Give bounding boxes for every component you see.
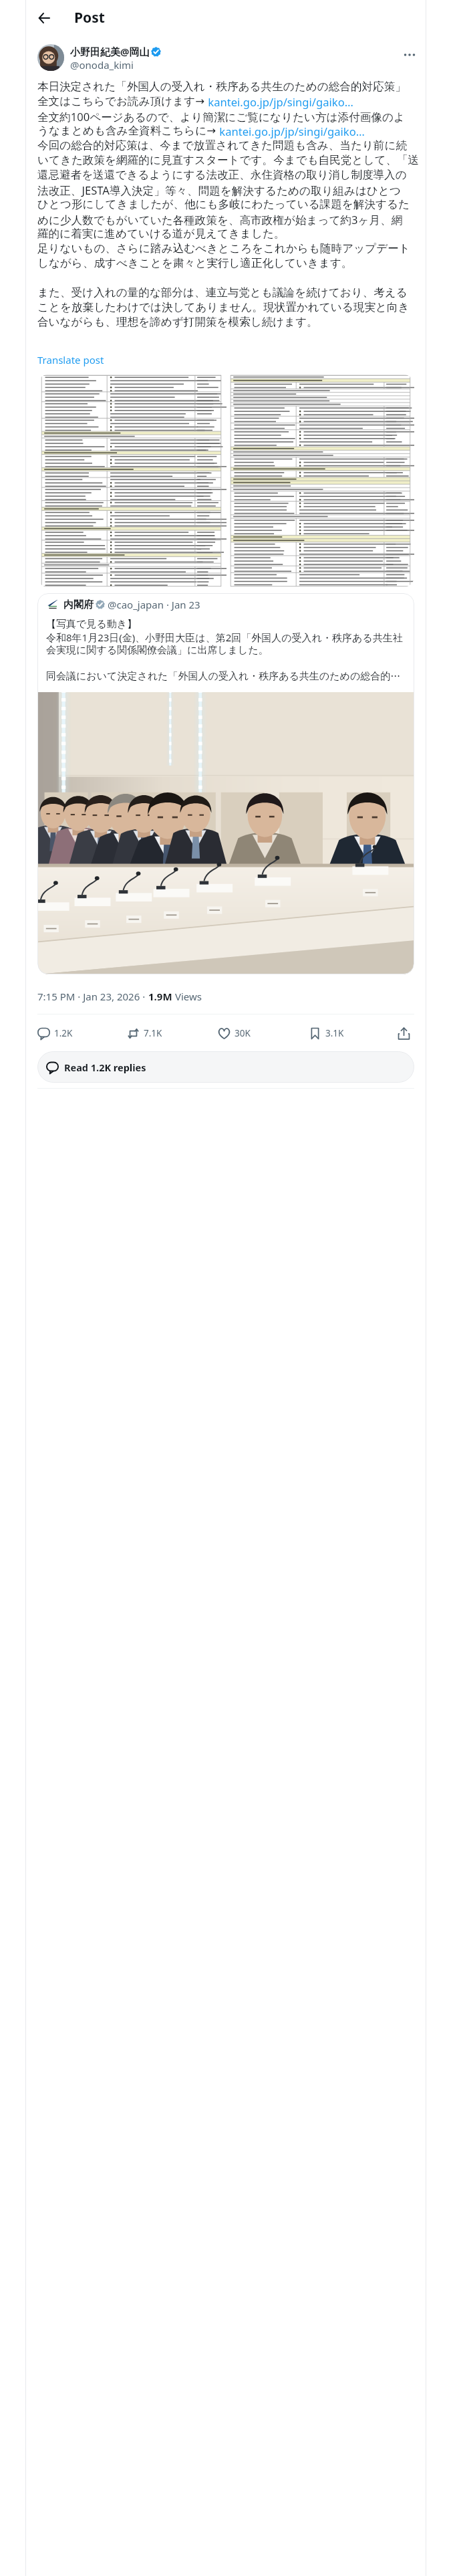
staticText: 7.1K [144,1027,162,1039]
button[interactable]: kantei.go.jp/jp/singi/gaiko… [205,94,353,109]
staticText: 本日決定された「外国人の受入れ・秩序ある共生のための総合的対応策」 [37,80,406,94]
staticText: Read 1.2K replies [64,1061,146,1074]
button[interactable]: Profile photo [37,44,64,71]
staticText: Views [172,990,202,1003]
button[interactable]: More [399,44,420,66]
staticText: 小野田紀美@岡山 [70,45,150,58]
staticText: 全文はこちらでお読み頂けます→ [37,94,205,108]
staticText: 3.1K [325,1027,344,1039]
button[interactable]: 内閣府 [37,593,414,974]
button[interactable]: Translate post [37,353,104,366]
staticText: ことを放棄したわけでは決してありません。現状置かれている現実と向き [37,300,410,314]
staticText: 法改正、JESTA導入決定」等々、問題を解決するための取り組みはひとつ [37,183,402,197]
button[interactable]: Like [218,1020,309,1047]
staticText: 【写真で見る動き】 [46,618,138,631]
staticText: Post [74,8,105,27]
staticText: しながら、成すべきことを粛々と実行し適正化していきます。 [37,256,353,270]
staticText: @onoda_kimi [70,58,134,72]
staticText: めに少人数でもがいていた各種政策を、高市政権が始まって約3ヶ月、網 [37,212,403,227]
button[interactable]: Reply [37,1020,127,1047]
button[interactable]: Bookmark [309,1020,393,1047]
staticText: 30K [235,1027,251,1039]
button[interactable]: kantei.go.jp/jp/singi/gaiko… [216,124,365,138]
staticText: 会実現に関する関係閣僚会議」に出席しました。 [46,644,269,657]
staticText: また、受け入れの量的な部分は、連立与党とも議論を続けており、考える [37,286,408,300]
staticText: 令和8年1月23日(金)、小野田大臣は、第2回「外国人の受入れ・秩序ある共生社 [46,631,403,644]
button[interactable]: Attached images [37,374,414,587]
staticText: 足りないもの、さらに踏み込むべきところをこれからも随時アップデート [37,241,410,255]
staticText: 内閣府 [63,599,94,611]
staticText: 1.2K [54,1027,73,1039]
staticText: 羅的に着実に進めていける道が見えてきました。 [37,227,285,241]
button[interactable]: Read 1.2K replies [37,1051,414,1083]
staticText: いてきた政策を網羅的に見直すスタートです。今までも自民党として、「送 [37,153,420,167]
staticText: @cao_japan · Jan 23 [108,598,200,611]
staticText: 7:15 PM · Jan 23, 2026 · [37,990,148,1003]
button[interactable]: Share [393,1023,414,1044]
staticText: 合いながらも、理想を諦めず打開策を模索し続けます。 [37,315,318,329]
button[interactable]: Repost [127,1020,218,1047]
staticText: うなまとめも含み全資料こちらに→ [37,124,216,138]
button[interactable]: Back [33,7,55,29]
staticText: 全文約100ページあるので、より簡潔にご覧になりたい方は添付画像のよ [37,109,405,124]
staticText: 還忌避者を送還できるようにする法改正、永住資格の取り消し制度導入の [37,168,407,182]
staticText: 1.9M [148,990,172,1003]
staticText: 同会議において決定された「外国人の受入れ・秩序ある共生のための総合的対… [46,670,406,683]
staticText: 今回の総合的対応策は、今まで放置されてきた問題も含み、当たり前に続 [37,138,408,152]
staticText: ひとつ形にしてきましたが、他にも多岐にわたっている課題を解決するた [37,197,410,211]
